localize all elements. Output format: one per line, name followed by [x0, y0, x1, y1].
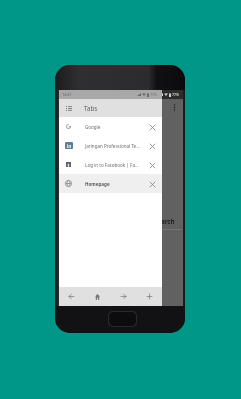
staticText: 14:41 [62, 92, 72, 97]
button[interactable]: Close tab [147, 122, 157, 132]
button[interactable]: Close tab [147, 160, 157, 170]
staticText: Jaringan Professional Te... [85, 143, 147, 149]
staticText: 77% [150, 92, 158, 97]
button[interactable]: Close tab [147, 179, 157, 189]
button[interactable]: Home [84, 287, 110, 306]
staticText: 77% [172, 92, 180, 97]
button[interactable]: Homepage [59, 174, 162, 193]
staticText: Homepage [85, 181, 147, 187]
staticText: Log in to Facebook | Fa... [85, 162, 147, 168]
staticText: arch [161, 217, 175, 225]
button[interactable]: More options [170, 103, 179, 112]
staticText: Tabs [84, 104, 98, 112]
button[interactable]: New tab [136, 287, 162, 306]
button[interactable]: Forward [110, 287, 136, 306]
button[interactable]: Log in to Facebook | Fa... [59, 155, 162, 174]
button[interactable]: Close tab [147, 141, 157, 151]
button[interactable]: Jaringan Professional Te... [59, 136, 162, 155]
button[interactable]: Open menu [63, 103, 74, 114]
button[interactable]: Google [59, 117, 162, 136]
button[interactable]: Back [59, 287, 84, 306]
staticText: Google [85, 124, 147, 130]
